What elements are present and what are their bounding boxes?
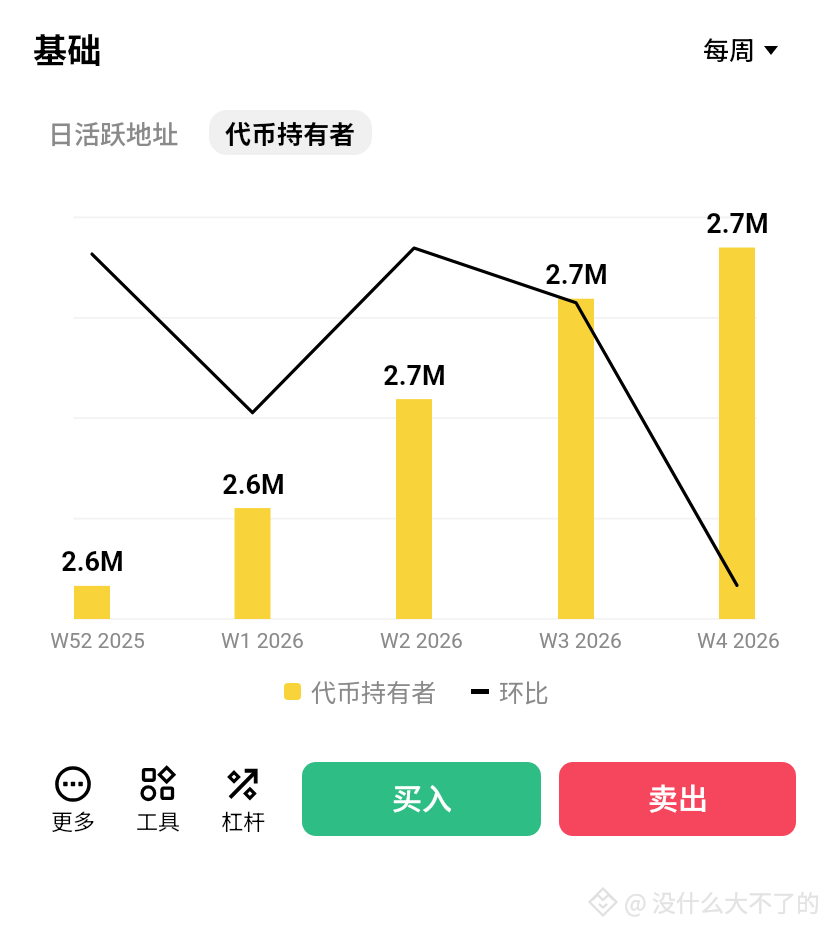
staticText: 代币持有者 — [311, 673, 437, 709]
button[interactable]: 工具 — [118, 765, 198, 836]
staticText: 2.7M — [383, 360, 446, 392]
button[interactable]: 卖出 — [559, 762, 796, 836]
staticText: 买入 — [392, 775, 452, 818]
staticText: 卖出 — [648, 775, 708, 818]
staticText: 代币持有者 — [225, 114, 356, 152]
staticText: 2.7M — [545, 259, 608, 291]
button[interactable]: 日活跃地址 — [32, 110, 195, 155]
button[interactable]: 每周 — [697, 26, 784, 72]
staticText: W3 2026 — [539, 629, 622, 654]
staticText: W1 2026 — [221, 629, 304, 654]
staticText: 每周 — [703, 30, 756, 68]
button[interactable]: 买入 — [302, 762, 541, 836]
button[interactable]: 代币持有者 — [284, 673, 550, 709]
staticText: @ 没什么大不了的 — [624, 884, 821, 919]
staticText: 2.6M — [61, 546, 124, 578]
staticText: 2.7M — [706, 208, 769, 240]
button[interactable]: 更多 — [33, 765, 113, 836]
staticText: 杠杆 — [221, 804, 266, 836]
staticText: W4 2026 — [697, 629, 780, 654]
button[interactable]: 杠杆 — [203, 765, 283, 836]
staticText: W2 2026 — [380, 629, 463, 654]
staticText: W52 2025 — [50, 629, 145, 654]
staticText: 环比 — [499, 673, 550, 709]
staticText: 更多 — [51, 804, 96, 836]
staticText: 2.6M — [222, 469, 285, 501]
button[interactable]: 代币持有者 — [209, 110, 372, 155]
other: 杠杆 — [224, 765, 262, 803]
other: 更多 — [54, 765, 92, 803]
staticText: 日活跃地址 — [48, 114, 179, 152]
staticText: 基础 — [33, 24, 101, 73]
staticText: 工具 — [136, 804, 181, 836]
other: 工具 — [139, 765, 177, 803]
